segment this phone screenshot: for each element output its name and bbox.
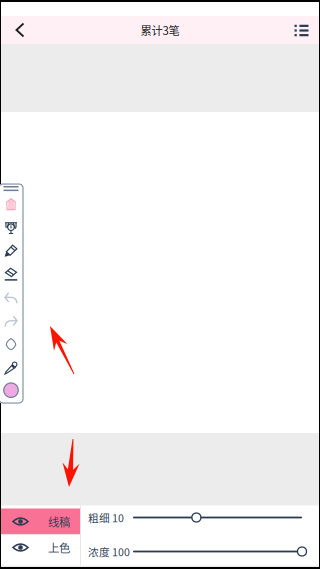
button[interactable]: Redo bbox=[0, 309, 22, 333]
button[interactable]: Colour picker bbox=[0, 356, 22, 380]
button[interactable]: Eraser bbox=[0, 263, 22, 286]
button[interactable]: Back bbox=[1, 16, 39, 44]
button[interactable]: Clear canvas bbox=[0, 192, 22, 216]
button[interactable]: Brush settings bbox=[0, 216, 22, 239]
button[interactable]: 线稿 bbox=[1, 508, 80, 534]
button[interactable]: Layers menu bbox=[281, 16, 319, 44]
staticText: 粗细 10 bbox=[88, 510, 124, 525]
button[interactable]: 上色 bbox=[1, 534, 80, 560]
button[interactable]: Current colour bbox=[0, 380, 22, 401]
staticText: 上色 bbox=[48, 539, 70, 556]
button[interactable]: Pen bbox=[0, 239, 22, 263]
button[interactable]: Fill bbox=[0, 333, 22, 356]
button[interactable]: Undo bbox=[0, 286, 22, 309]
staticText: 浓度 100 bbox=[88, 544, 130, 559]
staticText: 累计3笔 bbox=[140, 22, 179, 38]
staticText: 线稿 bbox=[48, 513, 70, 530]
